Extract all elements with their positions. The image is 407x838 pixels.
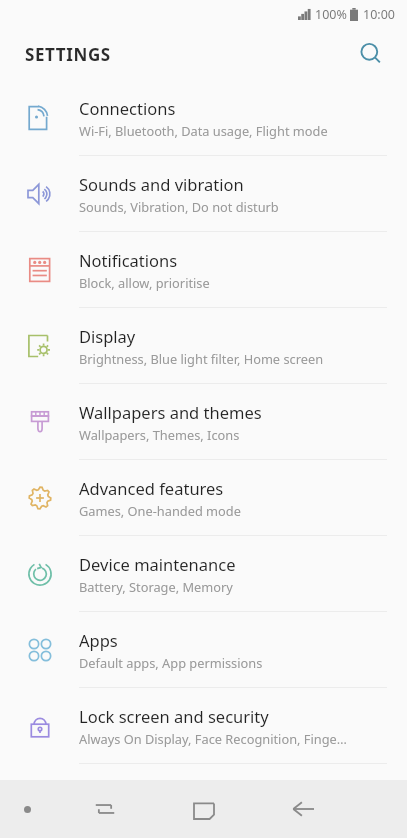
staticText: Brightness, Blue light filter, Home scre… [79, 350, 324, 367]
staticText: Sounds, Vibration, Do not disturb [79, 198, 279, 215]
button[interactable]: Display [0, 308, 407, 384]
staticText: Games, One-handed mode [79, 502, 241, 519]
button[interactable]: Back [253, 780, 352, 838]
button[interactable]: Wallpapers and themes [0, 384, 407, 460]
staticText: Wallpapers, Themes, Icons [79, 426, 240, 443]
button[interactable]: Home [154, 780, 253, 838]
button[interactable]: Sounds and vibration [0, 156, 407, 232]
staticText: Apps [79, 629, 118, 651]
staticText: Battery, Storage, Memory [79, 578, 233, 595]
button[interactable]: Connections [0, 80, 407, 156]
staticText: Wi-Fi, Bluetooth, Data usage, Flight mod… [79, 122, 328, 139]
button[interactable]: Search [349, 32, 393, 76]
button[interactable]: Recents [55, 780, 154, 838]
staticText: Connections [79, 97, 176, 119]
button[interactable]: Advanced features [0, 460, 407, 536]
staticText: Device maintenance [79, 553, 236, 575]
staticText: Sounds and vibration [79, 173, 244, 195]
staticText: 100% [315, 6, 347, 23]
button[interactable]: Device maintenance [0, 536, 407, 612]
staticText: Wallpapers and themes [79, 401, 262, 423]
button[interactable]: Notifications [0, 232, 407, 308]
staticText: 10:00 [363, 6, 395, 23]
staticText: Default apps, App permissions [79, 654, 263, 671]
staticText: Lock screen and security [79, 705, 269, 727]
button[interactable]: Apps [0, 612, 407, 688]
staticText: SETTINGS [25, 43, 111, 66]
staticText: Advanced features [79, 477, 224, 499]
staticText: Notifications [79, 249, 178, 271]
button[interactable]: Lock screen and security [0, 688, 407, 764]
staticText: Block, allow, prioritise [79, 274, 210, 291]
staticText: Always On Display, Face Recognition, Fin… [79, 730, 347, 747]
staticText: Display [79, 325, 136, 347]
